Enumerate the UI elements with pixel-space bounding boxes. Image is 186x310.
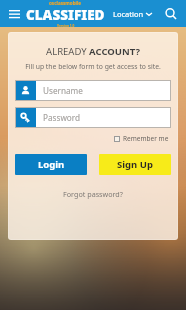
staticText: Remember me <box>123 134 169 143</box>
button[interactable]: Search <box>161 4 181 24</box>
button[interactable]: Menu <box>5 5 23 23</box>
staticText: Password <box>43 112 81 123</box>
button[interactable]: Remember me <box>112 132 171 145</box>
staticText: Version 1.0 <box>57 24 75 27</box>
button[interactable]: Login <box>15 154 87 175</box>
button[interactable]: Sign Up <box>99 154 171 175</box>
staticText: Sign Up <box>117 158 153 171</box>
staticText: CLASSIFIED <box>26 6 105 24</box>
staticText: Username <box>43 85 83 96</box>
button[interactable]: Forgot password? <box>57 187 129 201</box>
staticText: Login <box>38 158 65 171</box>
staticText: Fill up the below form to get access to … <box>15 62 171 71</box>
staticText: ALREADY ACCOUNT? <box>46 45 140 58</box>
button[interactable]: Username <box>15 80 171 101</box>
staticText: Location <box>113 9 144 19</box>
button[interactable]: Location <box>111 7 154 21</box>
staticText: Forgot password? <box>63 189 123 199</box>
button[interactable]: Password <box>15 107 171 128</box>
button[interactable]: osclassmobile <box>26 0 105 27</box>
staticText: osclassmobile <box>49 0 82 6</box>
